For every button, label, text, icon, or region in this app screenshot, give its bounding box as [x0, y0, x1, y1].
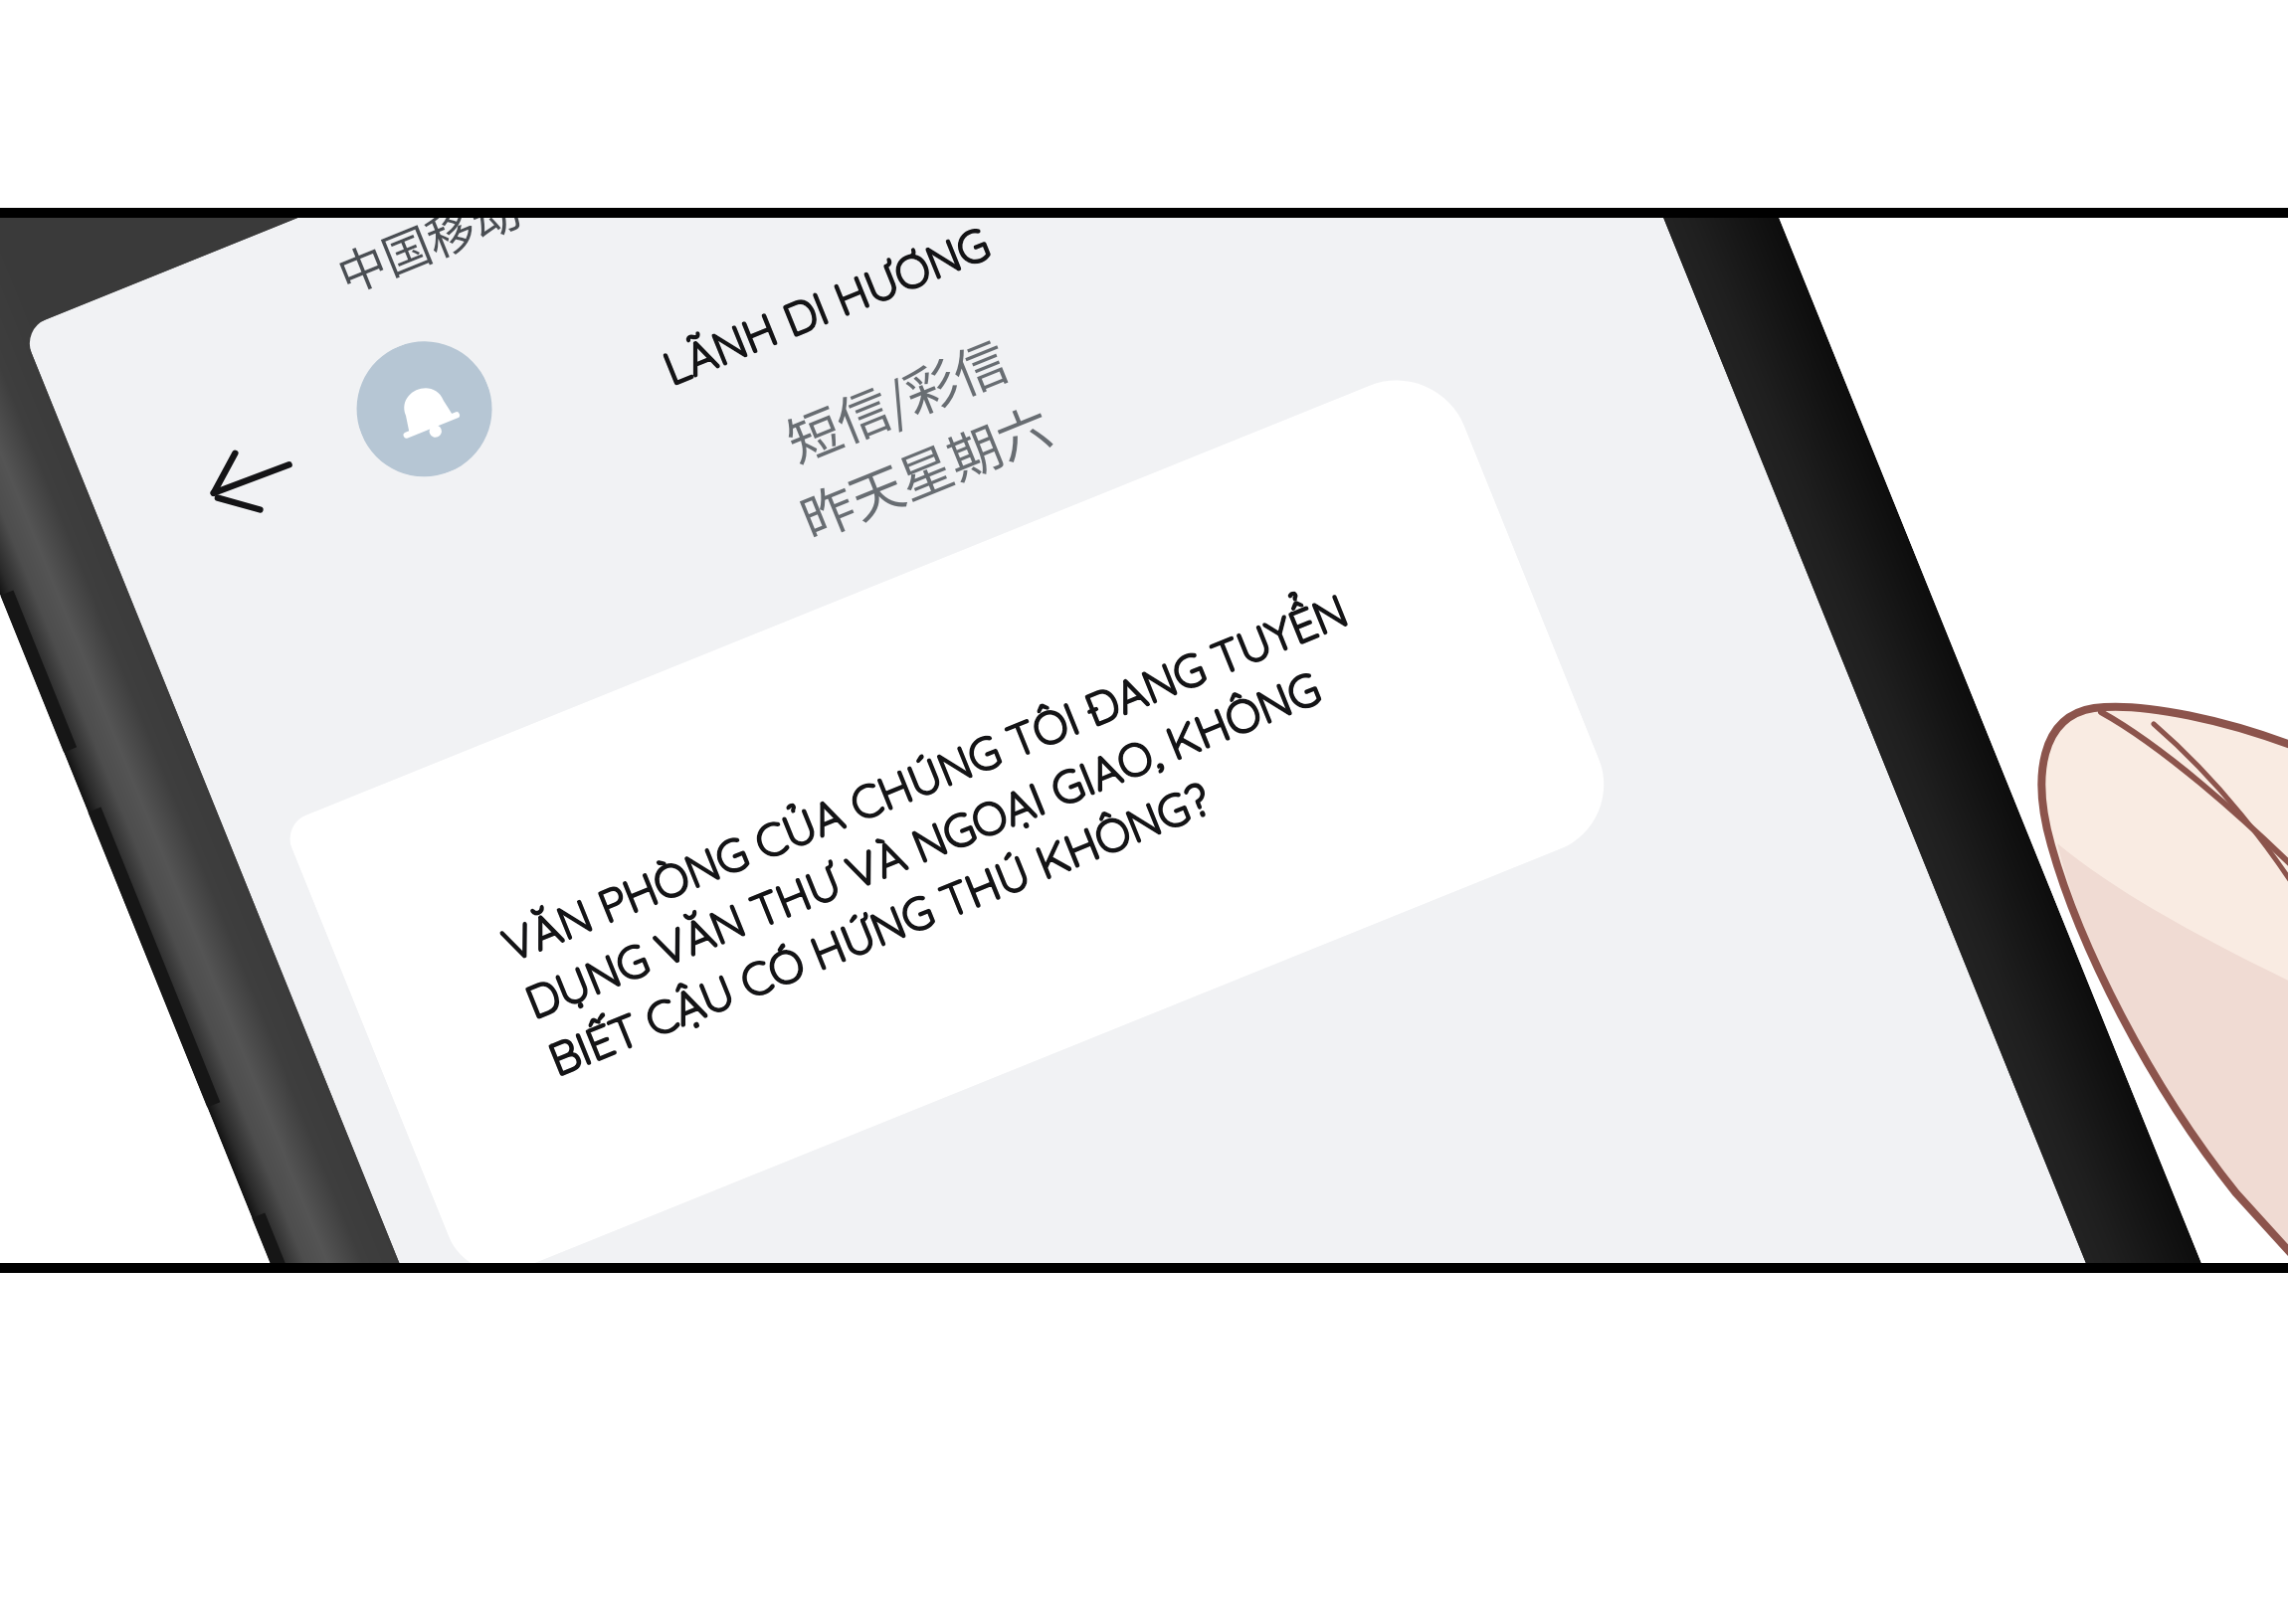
staticText: LÃNH DI HƯƠNG	[656, 215, 999, 396]
button[interactable]: VĂN PHÒNG CỦA CHÚNG TÔI ĐANG TUYỂN DỤNG …	[282, 358, 1625, 1289]
staticText: 短信/彩信 昨天星期六	[760, 314, 1061, 554]
button[interactable]: Contact avatar	[336, 321, 512, 497]
staticText: VĂN PHÒNG CỦA CHÚNG TÔI ĐANG TUYỂN DỤNG …	[495, 582, 1402, 1087]
staticText: LÃNH DI HƯƠNG	[654, 214, 997, 396]
staticText: VĂN PHÒNG CỦA CHÚNG TÔI ĐANG TUYỂN DỤNG …	[494, 581, 1401, 1087]
staticText: VĂN PHÒNG CỦA CHÚNG TÔI ĐANG TUYỂN DỤNG …	[495, 581, 1402, 1086]
staticText: LÃNH DI HƯƠNG	[655, 214, 998, 395]
staticText: LÃNH DI HƯƠNG	[655, 215, 998, 397]
staticText: VĂN PHÒNG CỦA CHÚNG TÔI ĐANG TUYỂN DỤNG …	[494, 582, 1401, 1087]
staticText: 中国移动 4G	[326, 145, 595, 307]
button[interactable]: Back	[180, 414, 320, 545]
